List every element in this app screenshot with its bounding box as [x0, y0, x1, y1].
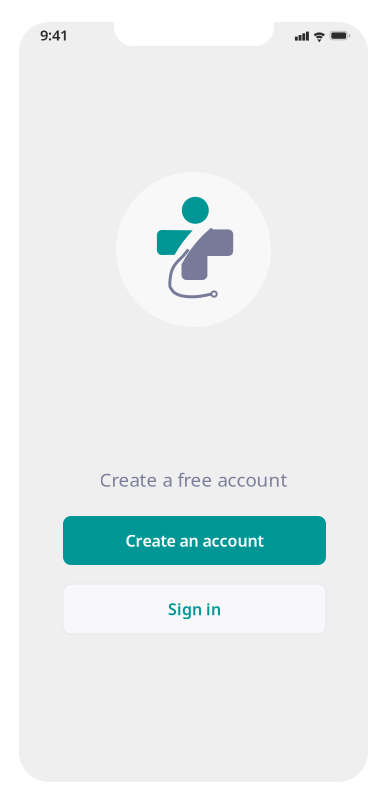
button[interactable]: Create an account: [63, 516, 326, 565]
button[interactable]: Sign in: [63, 584, 326, 634]
staticText: Create an account: [125, 530, 263, 551]
staticText: Sign in: [168, 598, 221, 620]
staticText: Create a free account: [99, 467, 287, 492]
staticText: 9:41: [40, 25, 68, 44]
